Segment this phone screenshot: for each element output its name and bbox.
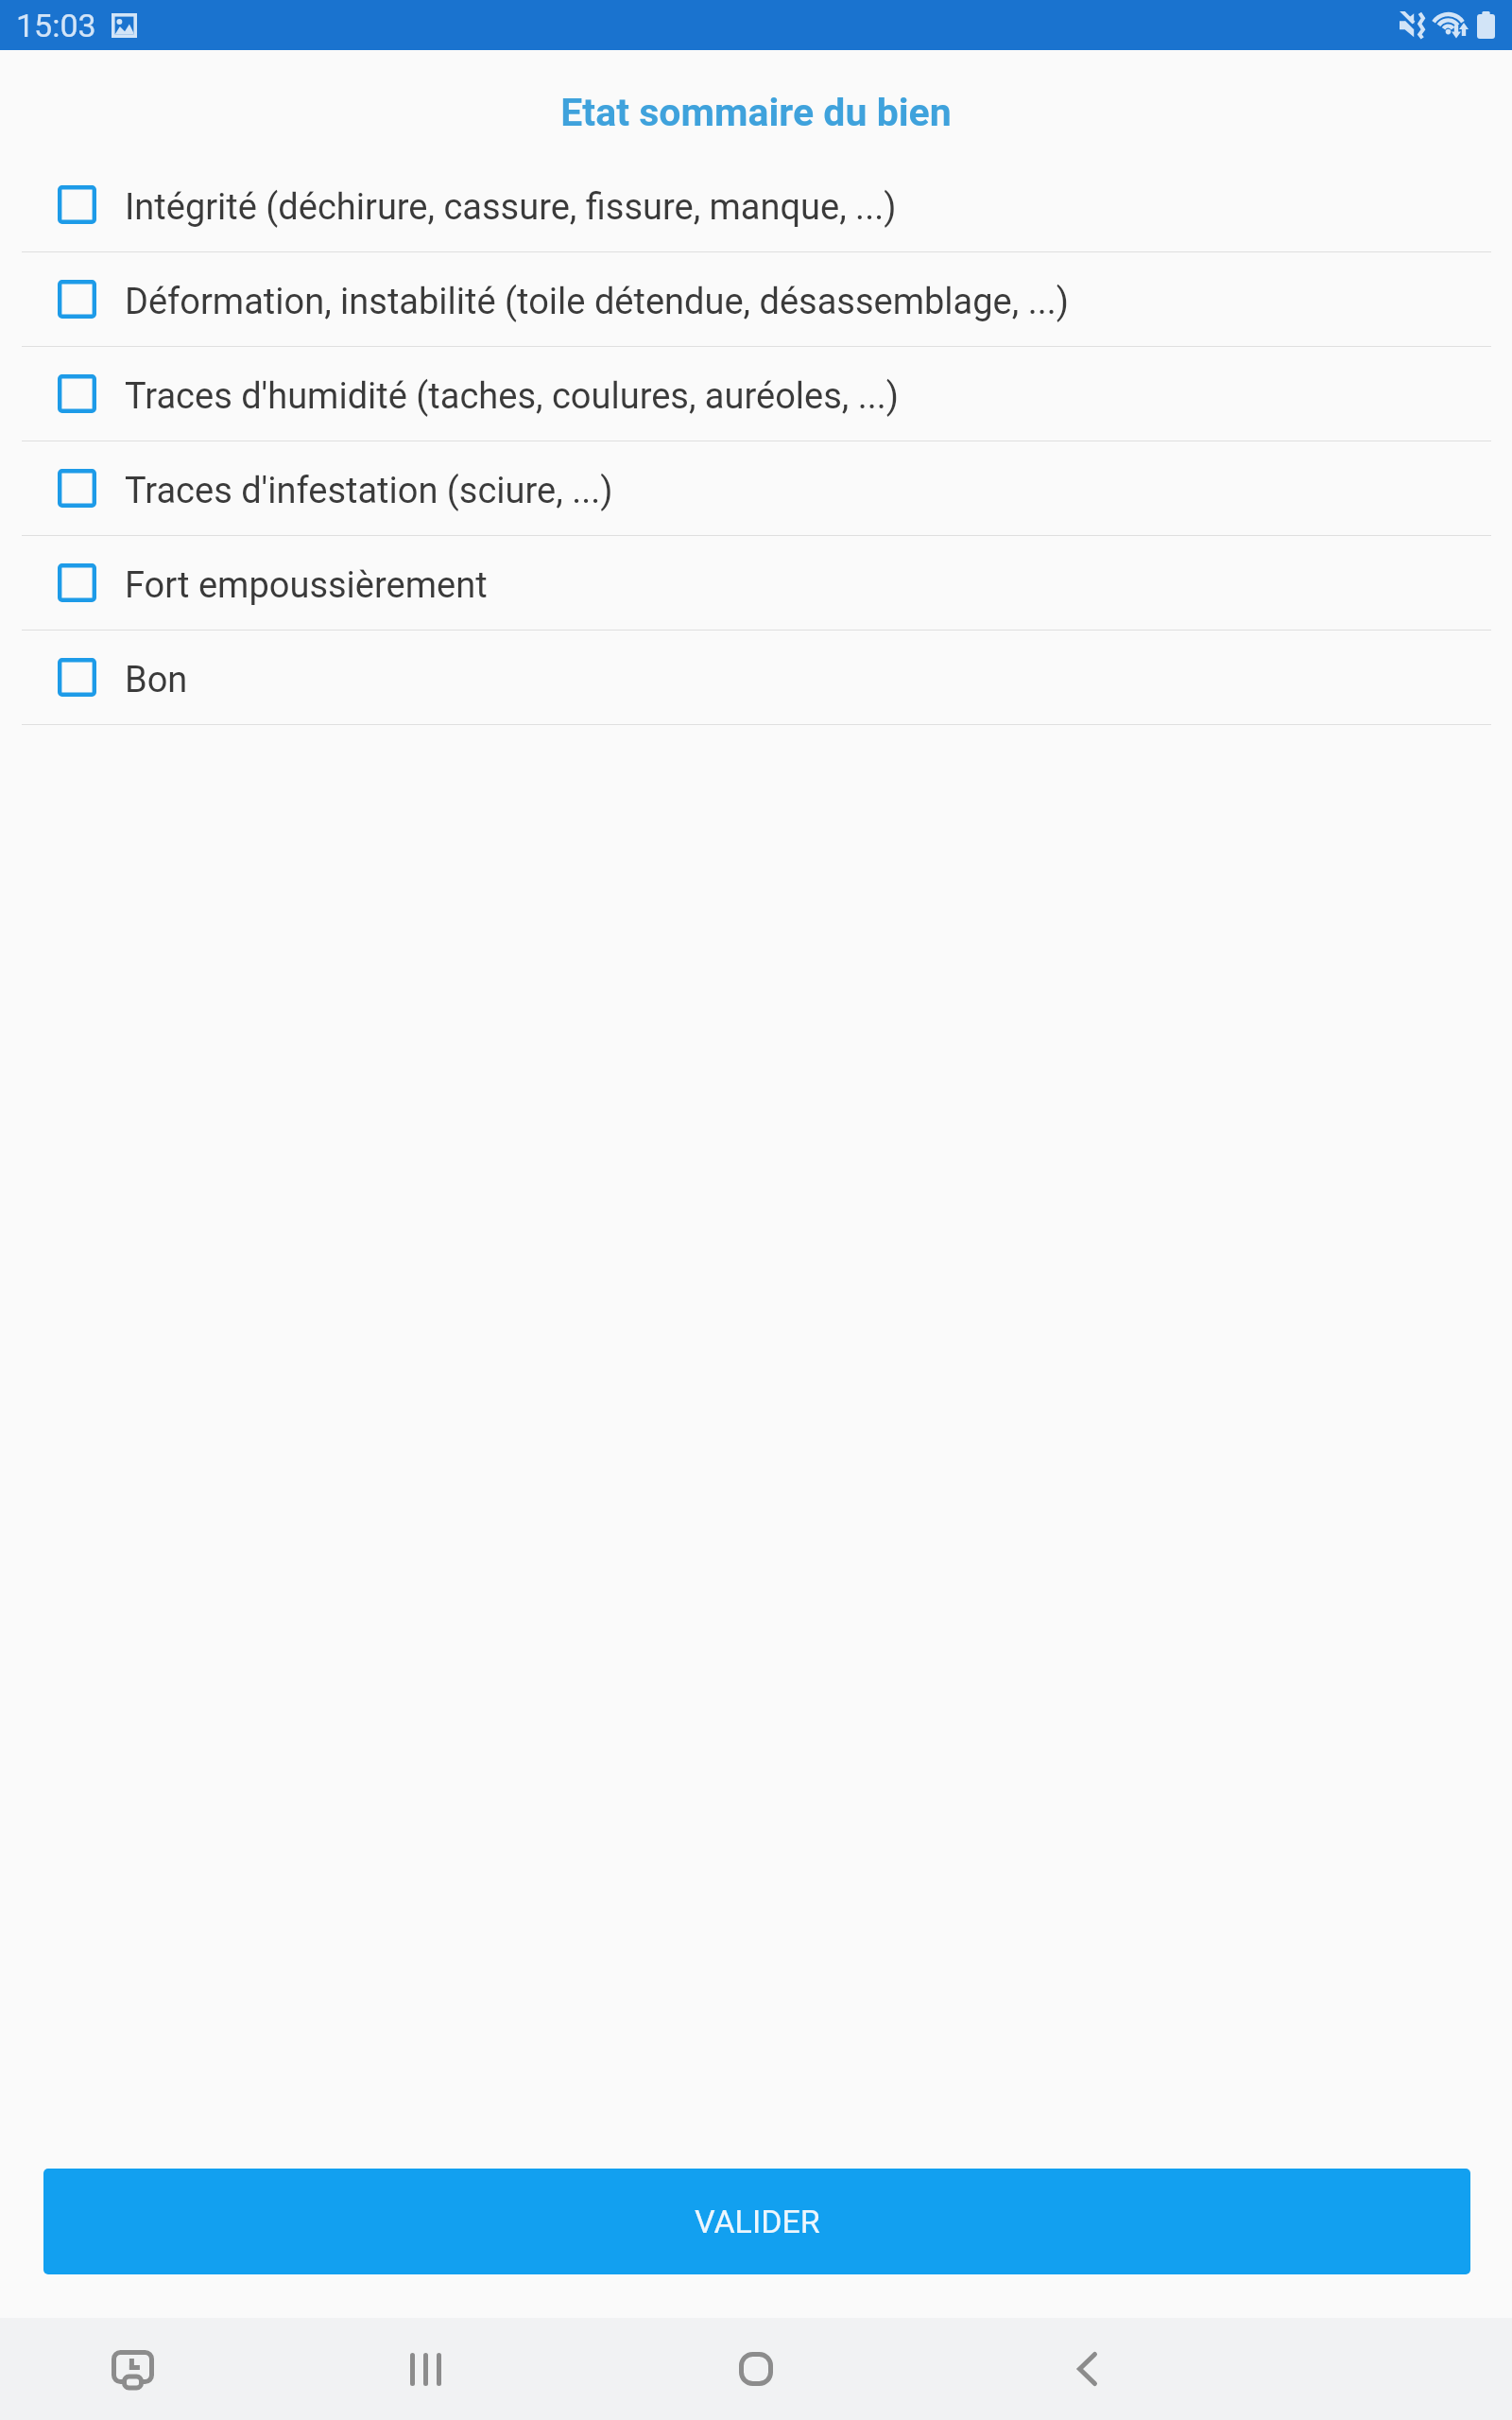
staticText: Traces d'infestation (sciure, ...) <box>125 470 613 512</box>
button[interactable]: Home <box>713 2318 799 2420</box>
staticText: Déformation, instabilité (toile détendue… <box>125 281 1069 323</box>
staticText: Etat sommaire du bien <box>560 90 952 135</box>
staticText: Traces d'humidité (taches, coulures, aur… <box>125 375 900 418</box>
button[interactable]: Bon <box>0 631 1512 725</box>
staticText: 15:03 <box>16 7 96 44</box>
button[interactable]: Fort empoussièrement <box>0 536 1512 631</box>
staticText: Intégrité (déchirure, cassure, fissure, … <box>125 186 897 229</box>
button[interactable]: Traces d'humidité (taches, coulures, aur… <box>0 347 1512 441</box>
button[interactable]: Traces d'infestation (sciure, ...) <box>0 441 1512 536</box>
staticText: Bon <box>125 659 188 701</box>
button[interactable]: Intégrité (déchirure, cassure, fissure, … <box>0 158 1512 252</box>
button[interactable]: Recent apps <box>383 2318 468 2420</box>
button[interactable]: VALIDER <box>43 2169 1470 2274</box>
button[interactable]: Back <box>1044 2318 1129 2420</box>
button[interactable]: Déformation, instabilité (toile détendue… <box>0 252 1512 347</box>
button[interactable]: Hide keyboard <box>90 2318 175 2420</box>
staticText: Fort empoussièrement <box>125 564 488 607</box>
staticText: VALIDER <box>695 2203 820 2240</box>
